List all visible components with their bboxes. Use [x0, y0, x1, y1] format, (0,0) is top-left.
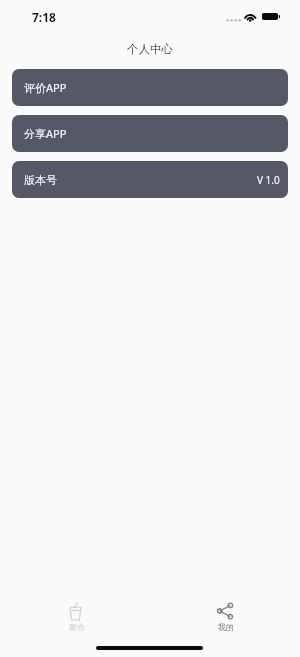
staticText: 聚合	[69, 622, 85, 632]
staticText: 版本号	[24, 173, 57, 187]
button[interactable]: 版本号	[12, 161, 288, 198]
button[interactable]: 分享APP	[12, 115, 288, 152]
button[interactable]: 评价APP	[12, 69, 288, 106]
staticText: 个人中心	[127, 42, 173, 56]
staticText: 评价APP	[24, 80, 67, 95]
staticText: 我的	[218, 622, 234, 632]
staticText: V 1.0	[257, 173, 280, 187]
staticText: 7:18	[32, 9, 56, 25]
button[interactable]: 我的	[150, 594, 300, 638]
staticText: 分享APP	[24, 126, 67, 141]
button[interactable]: 聚合	[0, 594, 150, 638]
